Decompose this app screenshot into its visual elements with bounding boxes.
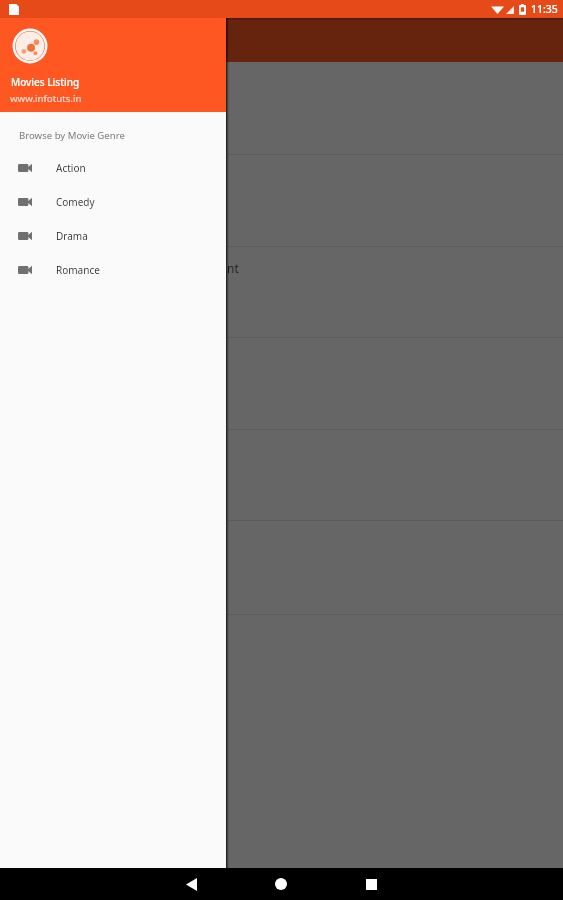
staticText: Browse by Movie Genre [19,129,125,142]
button[interactable] [0,430,563,520]
staticText: Drama [56,229,88,243]
button: Movies Listing [0,0,226,900]
button[interactable]: Romance [0,253,226,287]
button[interactable]: Close navigation drawer [226,18,563,900]
button[interactable]: Recents [351,868,391,900]
button[interactable] [0,155,563,246]
button[interactable] [0,62,563,154]
staticText: Action [56,161,86,175]
button[interactable]: Drama [0,219,226,253]
staticText: 11:35 [531,2,558,16]
staticText: nt [227,260,239,276]
staticText: www.infotuts.in [10,92,82,105]
staticText: Comedy [56,195,95,209]
button[interactable]: Back [171,868,211,900]
button[interactable]: Comedy [0,185,226,219]
button[interactable]: Action [0,151,226,185]
staticText: Romance [56,263,100,277]
button[interactable]: Home [261,868,301,900]
button[interactable]: Movies Listing [0,0,226,112]
button[interactable]: nt [0,247,563,337]
button[interactable] [0,338,563,429]
button[interactable] [0,521,563,614]
staticText: Movies Listing [11,75,80,89]
